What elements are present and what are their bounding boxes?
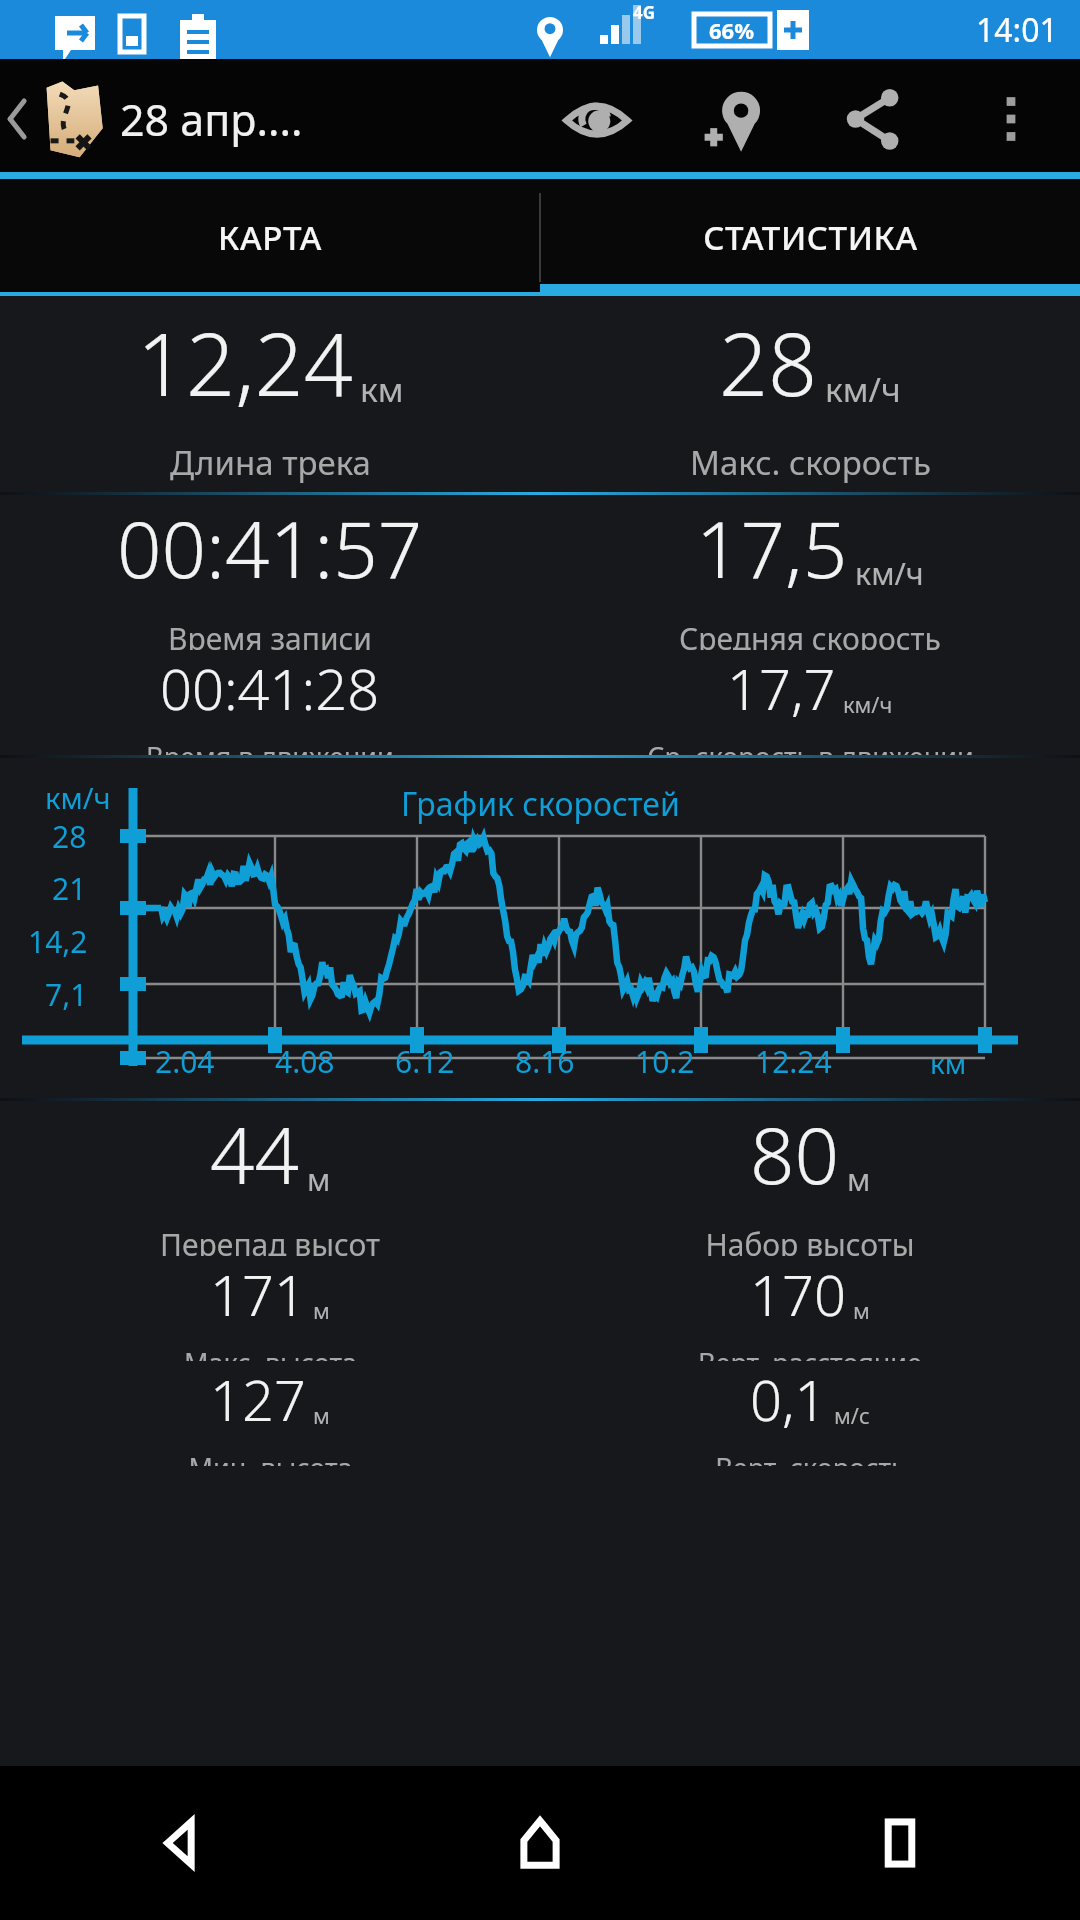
staticText: 00:41:57: [117, 495, 423, 601]
button[interactable]: Add point: [666, 59, 804, 179]
staticText: 28 апр....: [120, 90, 303, 149]
staticText: Время в движении: [146, 738, 394, 755]
staticText: Верт. расстояние: [698, 1344, 922, 1361]
button[interactable]: КАРТА: [0, 179, 539, 296]
staticText: Макс. скорость: [690, 440, 931, 485]
button[interactable]: Home: [470, 1773, 610, 1913]
staticText: 171: [210, 1256, 306, 1332]
staticText: м: [313, 1296, 330, 1326]
staticText: 14,2: [28, 921, 88, 962]
staticText: Перепад высот: [160, 1224, 380, 1256]
staticText: 7,1: [45, 974, 88, 1015]
staticText: км/ч: [825, 366, 901, 412]
button[interactable]: 170: [540, 1256, 1080, 1361]
button[interactable]: 17,7: [540, 650, 1080, 755]
staticText: км: [930, 1044, 967, 1082]
staticText: 44: [210, 1101, 300, 1207]
staticText: 170: [750, 1256, 846, 1332]
staticText: Макс. высота: [184, 1344, 357, 1361]
staticText: 2.04: [155, 1041, 215, 1082]
button[interactable]: Share: [804, 59, 942, 179]
button[interactable]: Recents: [830, 1773, 970, 1913]
staticText: 6.12: [395, 1041, 455, 1082]
staticText: Верт. скорость: [715, 1449, 906, 1466]
staticText: Ср. скорость в движении: [647, 738, 974, 755]
button[interactable]: 127: [0, 1361, 540, 1466]
staticText: 17,7: [727, 650, 836, 726]
button[interactable]: 00:41:28: [0, 650, 540, 755]
staticText: 8.16: [515, 1041, 575, 1082]
staticText: 66%: [709, 15, 755, 45]
staticText: м: [313, 1401, 330, 1431]
staticText: 4.08: [275, 1041, 335, 1082]
staticText: Длина трека: [170, 440, 371, 485]
staticText: км/ч: [855, 552, 924, 593]
staticText: Средняя скорость: [679, 618, 941, 650]
staticText: 0,1: [750, 1361, 827, 1437]
button[interactable]: СТАТИСТИКА: [541, 179, 1080, 296]
staticText: СТАТИСТИКА: [703, 215, 918, 260]
staticText: 14:01: [976, 8, 1058, 52]
button[interactable]: 171: [0, 1256, 540, 1361]
staticText: 12.24: [755, 1041, 832, 1082]
staticText: 21: [52, 868, 87, 909]
button[interactable]: 0,1: [540, 1361, 1080, 1466]
staticText: 28: [719, 304, 818, 421]
staticText: КАРТА: [218, 215, 322, 260]
button[interactable]: More options: [942, 59, 1080, 179]
staticText: м: [847, 1158, 871, 1199]
staticText: 28: [52, 816, 87, 857]
button[interactable]: 28 апр....: [0, 59, 528, 179]
button[interactable]: 00:41:57: [0, 495, 540, 650]
staticText: 4G: [633, 1, 656, 24]
staticText: м: [307, 1158, 331, 1199]
staticText: 17,5: [696, 495, 848, 601]
staticText: 127: [210, 1361, 306, 1437]
staticText: км/ч: [45, 778, 111, 817]
staticText: 12,24: [137, 304, 353, 421]
button[interactable]: 28: [540, 296, 1080, 492]
staticText: Мин. высота: [188, 1449, 353, 1466]
staticText: м: [853, 1296, 870, 1326]
staticText: Набор высоты: [705, 1224, 915, 1256]
button[interactable]: 80: [540, 1101, 1080, 1256]
staticText: км: [360, 366, 404, 412]
staticText: 00:41:28: [160, 650, 380, 726]
staticText: 10.2: [635, 1041, 695, 1082]
button[interactable]: 44: [0, 1101, 540, 1256]
staticText: м/с: [834, 1401, 870, 1431]
button[interactable]: Back: [110, 1773, 250, 1913]
button[interactable]: 12,24: [0, 296, 540, 492]
staticText: График скоростей: [401, 782, 680, 826]
button[interactable]: 17,5: [540, 495, 1080, 650]
staticText: км/ч: [843, 690, 893, 720]
staticText: 80: [750, 1101, 840, 1207]
staticText: Время записи: [168, 618, 372, 650]
button[interactable]: Visibility: [528, 59, 666, 179]
